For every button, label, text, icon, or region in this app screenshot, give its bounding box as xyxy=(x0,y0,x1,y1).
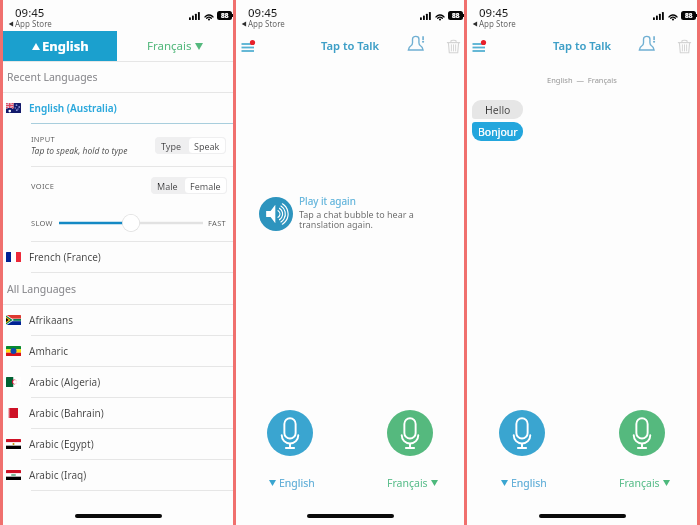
staticText: 88 xyxy=(452,11,460,20)
staticText: English (Australia) xyxy=(29,101,117,115)
button[interactable]: Hello xyxy=(472,100,523,119)
button[interactable]: Speak English xyxy=(267,410,313,456)
staticText: All Languages xyxy=(7,282,76,296)
staticText: FAST xyxy=(208,218,227,228)
button[interactable]: Arabic (Egypt) xyxy=(3,429,233,459)
button[interactable]: Arabic (Iraq) xyxy=(3,460,233,490)
button[interactable]: Menu xyxy=(469,35,491,57)
button[interactable]: Type xyxy=(161,137,182,154)
button[interactable]: Speak English xyxy=(499,410,545,456)
button[interactable]: Afrikaans xyxy=(3,305,233,335)
button[interactable]: English xyxy=(269,476,315,490)
button[interactable]: Arabic (Algeria) xyxy=(3,367,233,397)
button[interactable]: Arabic (Bahrain) xyxy=(3,398,233,428)
staticText: 88 xyxy=(221,11,229,20)
button[interactable]: Speak xyxy=(194,138,220,153)
button[interactable]: Français xyxy=(387,476,438,490)
button[interactable]: Français xyxy=(619,476,670,490)
staticText: English xyxy=(511,476,547,490)
staticText: Male xyxy=(157,180,178,192)
staticText: 09:45 xyxy=(479,5,509,21)
staticText: Type xyxy=(161,140,182,152)
button[interactable]: English xyxy=(3,31,117,61)
staticText: Français xyxy=(619,476,660,490)
button[interactable]: French (France) xyxy=(3,242,233,272)
button[interactable]: Contacts xyxy=(409,35,425,51)
button[interactable]: Speak French xyxy=(619,410,665,456)
button[interactable]: Amharic xyxy=(3,336,233,366)
staticText: Arabic (Bahrain) xyxy=(29,406,104,420)
staticText: Female xyxy=(190,180,221,192)
staticText: SLOW xyxy=(31,218,53,228)
staticText: Hello xyxy=(485,103,511,117)
staticText: Arabic (Algeria) xyxy=(29,375,101,389)
button[interactable]: Male xyxy=(157,177,178,194)
staticText: Tap a chat bubble to hear a xyxy=(299,208,414,220)
staticText: Tap to Talk xyxy=(553,38,612,53)
button[interactable]: English (Australia) xyxy=(3,93,233,123)
staticText: Tap to speak, hold to type xyxy=(31,145,128,157)
staticText: Français xyxy=(387,476,428,490)
staticText: Tap to Talk xyxy=(321,38,380,53)
staticText: English xyxy=(279,476,315,490)
button[interactable]: Speak French xyxy=(387,410,433,456)
staticText: translation again. xyxy=(299,218,373,230)
staticText: Afrikaans xyxy=(29,313,74,327)
button[interactable]: Delete xyxy=(446,39,461,54)
staticText: 09:45 xyxy=(248,5,278,21)
button[interactable]: Female xyxy=(190,178,221,193)
staticText: English — Français xyxy=(547,75,617,85)
staticText: Français xyxy=(147,38,192,54)
staticText: 09:45 xyxy=(15,5,45,21)
button[interactable]: Contacts xyxy=(640,35,656,51)
staticText: VOICE xyxy=(31,181,151,191)
button[interactable]: Menu xyxy=(238,35,260,57)
staticText: App Store xyxy=(248,18,285,29)
button[interactable]: English xyxy=(501,476,547,490)
staticText: Speak xyxy=(194,140,220,152)
button[interactable]: Bonjour xyxy=(472,122,523,141)
staticText: 88 xyxy=(685,11,693,20)
staticText: Amharic xyxy=(29,344,69,358)
staticText: Arabic (Iraq) xyxy=(29,468,87,482)
button[interactable]: Français xyxy=(117,31,233,61)
staticText: App Store xyxy=(15,18,52,29)
staticText: Bonjour xyxy=(478,125,518,139)
staticText: French (France) xyxy=(29,250,101,264)
staticText: Arabic (Egypt) xyxy=(29,437,94,451)
staticText: INPUT xyxy=(31,134,55,144)
staticText: Play it again xyxy=(299,194,356,208)
staticText: App Store xyxy=(479,18,516,29)
staticText: Recent Languages xyxy=(7,70,98,84)
button[interactable]: Play it again xyxy=(259,197,293,231)
staticText: English xyxy=(42,37,89,55)
button[interactable]: Delete xyxy=(677,39,692,54)
